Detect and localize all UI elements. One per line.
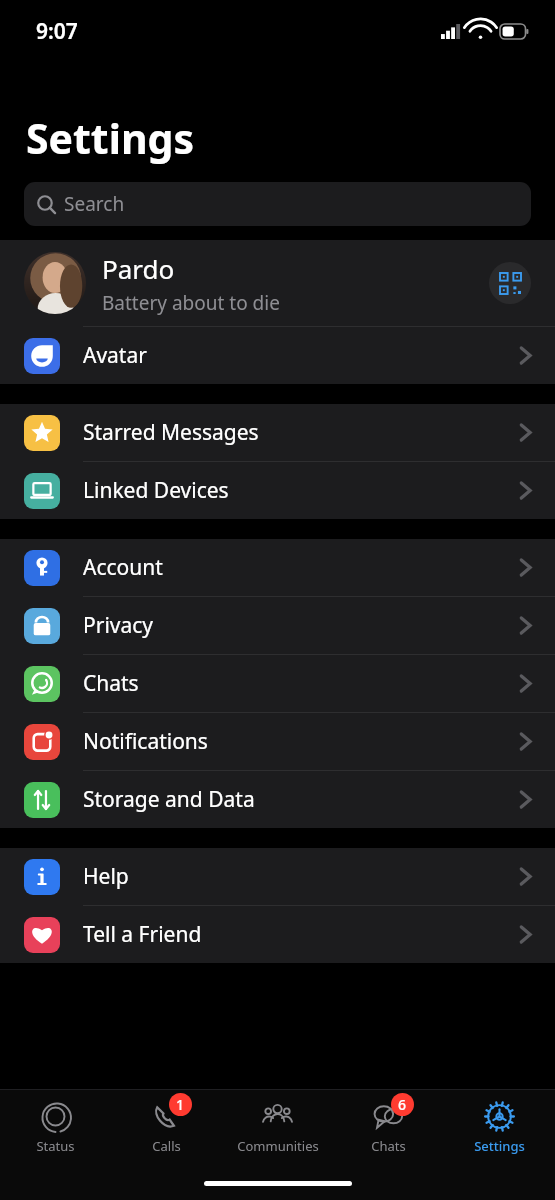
staticText: Storage and Data (83, 785, 255, 814)
staticText: Avatar (83, 341, 147, 370)
staticText: Notifications (83, 727, 208, 756)
staticText: Battery about to die (102, 290, 280, 316)
button[interactable]: Linked Devices (0, 462, 555, 519)
button[interactable]: Privacy (0, 597, 555, 655)
staticText: Help (83, 862, 129, 891)
staticText: Account (83, 553, 163, 582)
button[interactable]: Storage and Data (0, 771, 555, 828)
staticText: Chats (371, 1137, 406, 1155)
staticText: Chats (83, 669, 139, 698)
staticText: Pardo (102, 251, 175, 286)
button[interactable]: Account (0, 539, 555, 597)
button[interactable]: 6 (333, 1090, 444, 1166)
button[interactable]: QR code (489, 262, 531, 304)
staticText: Settings (26, 110, 195, 166)
staticText: 9:07 (36, 17, 78, 46)
button[interactable]: Chats (0, 655, 555, 713)
button[interactable]: Starred Messages (0, 404, 555, 462)
staticText: Starred Messages (83, 418, 259, 447)
staticText: Communities (237, 1137, 319, 1155)
staticText: 1 (176, 1095, 185, 1114)
button[interactable]: Pardo (0, 240, 555, 326)
staticText: Status (36, 1137, 75, 1155)
staticText: Tell a Friend (83, 920, 202, 949)
staticText: Settings (474, 1137, 525, 1155)
button[interactable]: Communities (222, 1090, 333, 1166)
staticText: Privacy (83, 611, 154, 640)
staticText: Linked Devices (83, 476, 229, 505)
staticText: Calls (152, 1137, 181, 1155)
button[interactable]: Settings (444, 1090, 555, 1166)
button[interactable]: Status (0, 1090, 111, 1166)
button[interactable]: Help (0, 848, 555, 906)
button[interactable]: Search (24, 182, 531, 226)
staticText: 6 (398, 1095, 407, 1114)
button[interactable]: Notifications (0, 713, 555, 771)
staticText: Search (64, 191, 125, 217)
button[interactable]: Avatar (0, 327, 555, 384)
button[interactable]: 1 (111, 1090, 222, 1166)
button[interactable]: Tell a Friend (0, 906, 555, 963)
